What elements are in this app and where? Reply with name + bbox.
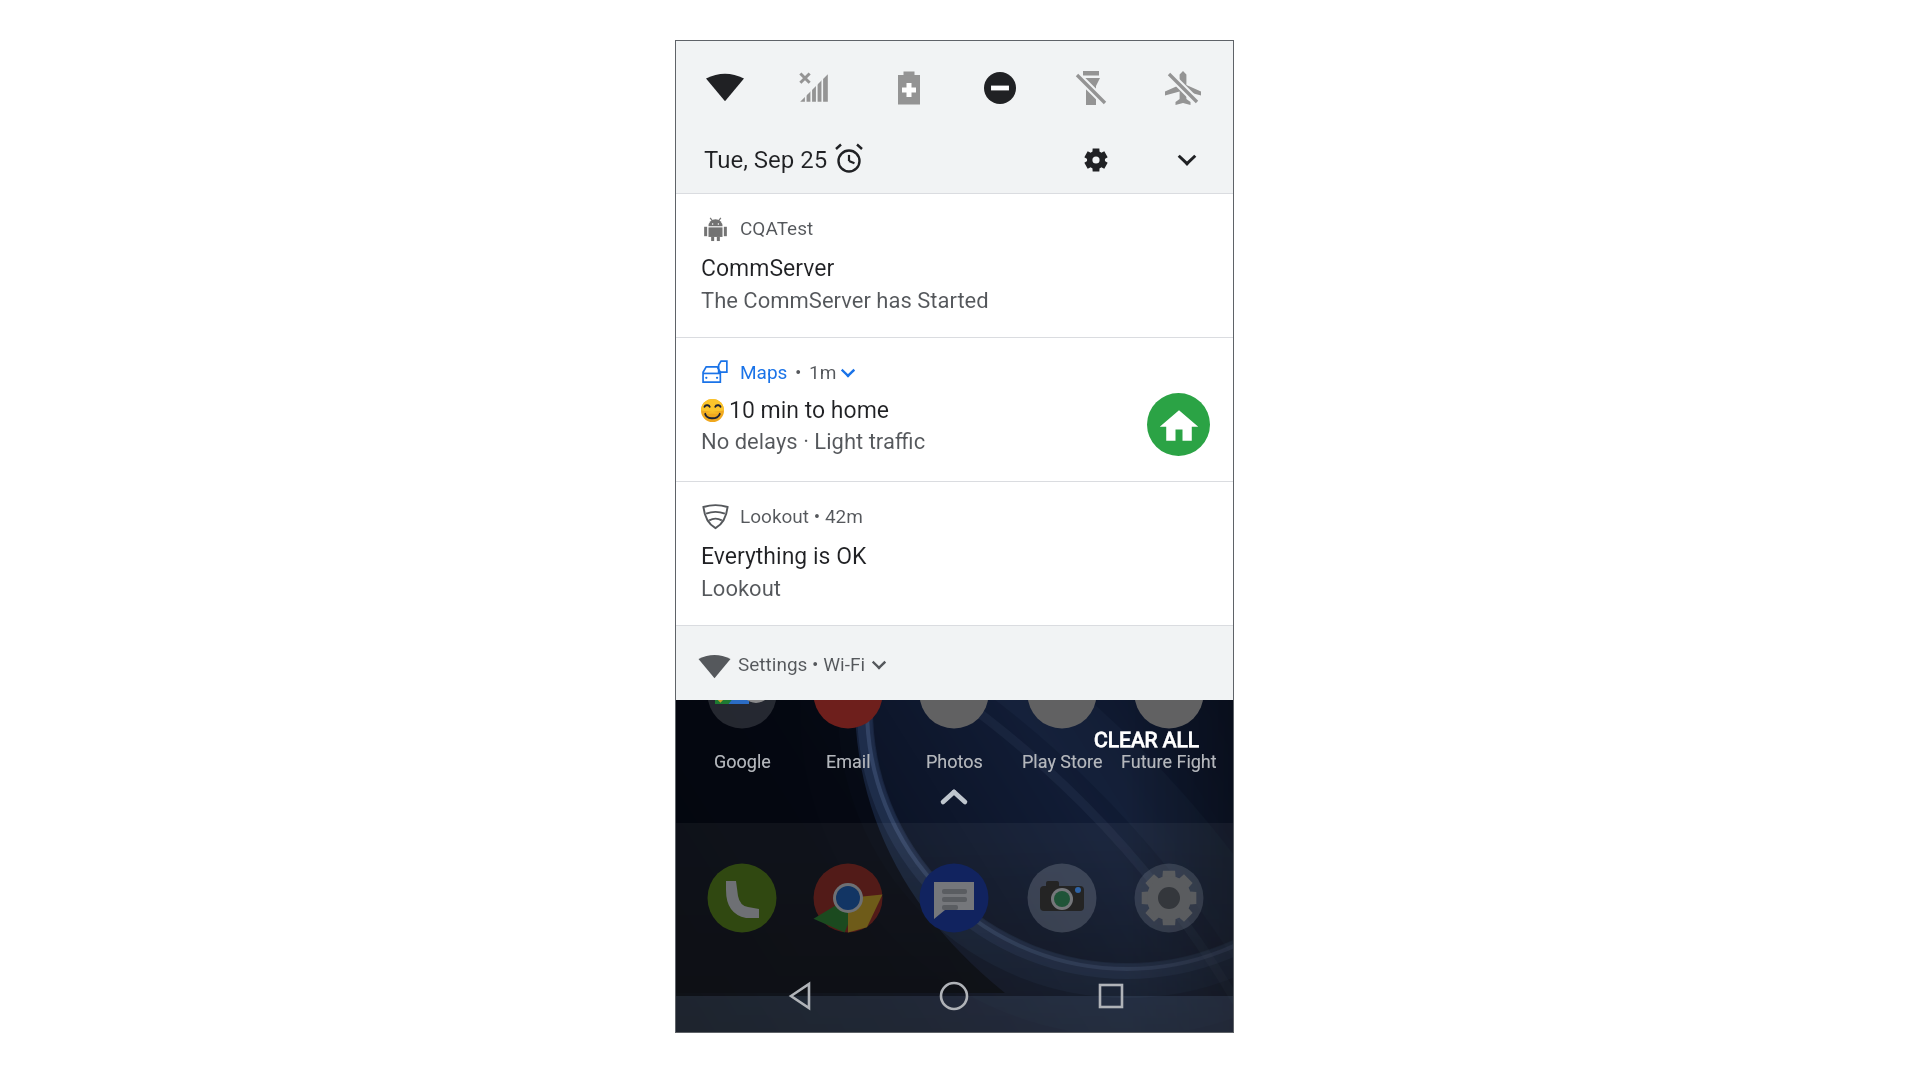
staticText: Future Fight bbox=[1121, 751, 1217, 772]
staticText: Google bbox=[714, 751, 771, 772]
staticText: Lookout bbox=[701, 576, 781, 602]
staticText: CQATest bbox=[740, 217, 814, 239]
staticText: Email bbox=[826, 751, 871, 772]
button[interactable]: Settings bbox=[1077, 141, 1115, 179]
button[interactable]: CLEAR ALL bbox=[1084, 722, 1210, 759]
button[interactable]: Navigate home bbox=[1147, 393, 1210, 456]
staticText: No delays · Light traffic bbox=[701, 429, 926, 455]
staticText: Play Store bbox=[1022, 751, 1103, 772]
staticText: CLEAR ALL bbox=[1094, 728, 1200, 753]
button[interactable]: CQATest bbox=[675, 194, 1234, 337]
staticText: Lookout • 42m bbox=[740, 505, 863, 527]
staticText: 10 min to home bbox=[729, 397, 890, 424]
staticText: Photos bbox=[926, 751, 983, 772]
staticText: The CommServer has Started bbox=[701, 288, 989, 314]
staticText: Everything is OK bbox=[701, 543, 867, 570]
staticText: Maps bbox=[740, 361, 788, 383]
staticText: 1m bbox=[809, 361, 837, 383]
button[interactable]: Maps bbox=[675, 338, 1234, 481]
staticText: • bbox=[795, 361, 802, 383]
button[interactable]: Expand quick settings bbox=[1168, 141, 1206, 179]
button[interactable]: Settings • Wi-Fi bbox=[675, 626, 1234, 700]
staticText: CommServer bbox=[701, 255, 835, 282]
button[interactable]: Lookout • 42m bbox=[675, 482, 1234, 625]
staticText: Tue, Sep 25 bbox=[704, 146, 828, 174]
staticText: Settings • Wi-Fi bbox=[738, 653, 866, 675]
